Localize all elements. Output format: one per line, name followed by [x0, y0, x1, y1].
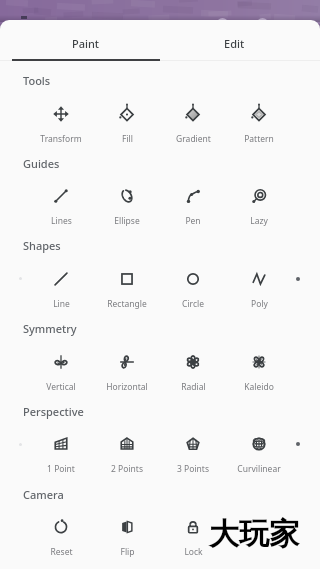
button[interactable]: Curvilinear: [228, 433, 290, 475]
staticText: 3 Points: [177, 463, 209, 475]
button[interactable]: Fill: [96, 103, 158, 145]
staticText: Kaleido: [244, 381, 274, 393]
staticText: 大玩家: [209, 515, 299, 553]
staticText: Pen: [185, 215, 201, 227]
button[interactable]: Kaleido: [228, 351, 290, 393]
button[interactable]: Transform: [30, 103, 92, 145]
button[interactable]: Line: [30, 268, 92, 310]
staticText: Horizontal: [106, 381, 148, 393]
button[interactable]: Lazy: [228, 185, 290, 227]
staticText: Lazy: [250, 215, 268, 227]
button[interactable]: Gradient: [162, 103, 224, 145]
staticText: Gradient: [176, 133, 211, 145]
staticText: Symmetry: [23, 321, 77, 336]
staticText: Curvilinear: [237, 463, 281, 475]
button[interactable]: Ellipse: [96, 185, 158, 227]
staticText: Ellipse: [114, 215, 140, 227]
staticText: Line: [53, 298, 70, 310]
staticText: Vertical: [46, 381, 76, 393]
staticText: Circle: [182, 298, 204, 310]
button[interactable]: Vertical: [30, 351, 92, 393]
staticText: Fill: [122, 133, 133, 145]
button[interactable]: Horizontal: [96, 351, 158, 393]
staticText: Pattern: [244, 133, 274, 145]
button[interactable]: 3 Points: [162, 433, 224, 475]
staticText: 1 Point: [47, 463, 75, 475]
button[interactable]: Circle: [162, 268, 224, 310]
staticText: Paint: [72, 36, 100, 51]
staticText: Edit: [224, 36, 245, 51]
button[interactable]: Paint: [12, 20, 160, 61]
button[interactable]: 2 Points: [96, 433, 158, 475]
button[interactable]: Lock: [162, 516, 224, 558]
button[interactable]: Pen: [162, 185, 224, 227]
button[interactable]: Rectangle: [96, 268, 158, 310]
staticText: Perspective: [23, 404, 84, 419]
staticText: Tools: [23, 73, 51, 88]
staticText: Transform: [40, 133, 82, 145]
staticText: Lock: [184, 546, 203, 558]
staticText: Camera: [23, 487, 64, 502]
staticText: Reset: [50, 546, 73, 558]
button[interactable]: Reset: [30, 516, 92, 558]
button[interactable]: 1 Point: [30, 433, 92, 475]
button[interactable]: Poly: [228, 268, 290, 310]
staticText: 2 Points: [111, 463, 143, 475]
staticText: Poly: [251, 298, 268, 310]
button[interactable]: Pattern: [228, 103, 290, 145]
button[interactable]: Lines: [30, 185, 92, 227]
staticText: Lines: [51, 215, 72, 227]
staticText: Radial: [181, 381, 206, 393]
staticText: Rectangle: [107, 298, 147, 310]
button[interactable]: Edit: [160, 20, 308, 61]
staticText: Shapes: [23, 238, 61, 253]
staticText: Guides: [23, 156, 60, 171]
button[interactable]: Flip: [96, 516, 158, 558]
button[interactable]: Radial: [162, 351, 224, 393]
staticText: Flip: [120, 546, 135, 558]
